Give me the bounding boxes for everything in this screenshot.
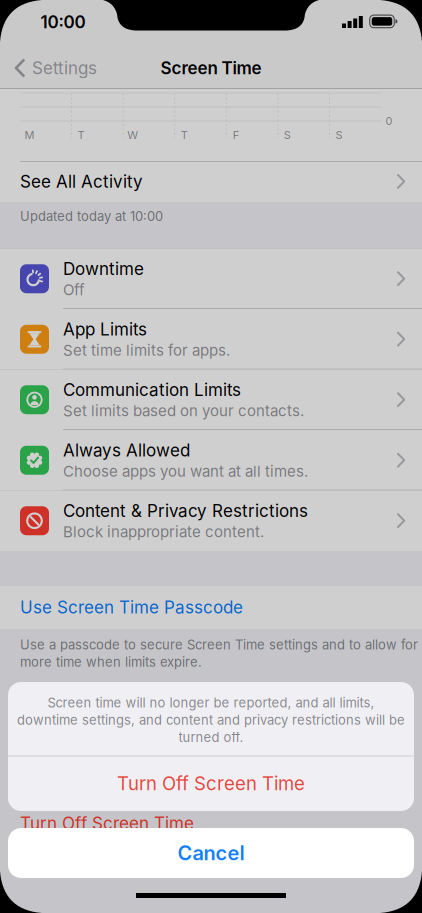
button[interactable]: Use Screen Time Passcode: [0, 586, 422, 629]
staticText: 0: [385, 114, 392, 128]
staticText: Turn Off Screen Time: [117, 772, 305, 795]
staticText: Always Allowed: [63, 440, 190, 461]
staticText: Use Screen Time Passcode: [20, 597, 243, 618]
staticText: S: [335, 128, 342, 142]
button[interactable]: Turn Off Screen Time: [8, 756, 414, 811]
button[interactable]: Downtime: [0, 248, 422, 309]
staticText: Set time limits for apps.: [63, 341, 230, 359]
staticText: Updated today at 10:00: [20, 208, 163, 224]
staticText: Set limits based on your contacts.: [63, 402, 304, 420]
staticText: See All Activity: [20, 171, 143, 192]
staticText: Screen time will no longer be reported, …: [47, 695, 374, 711]
staticText: more time when limits expire.: [20, 654, 202, 670]
staticText: downtime settings, and content and priva…: [17, 712, 405, 728]
staticText: Cancel: [177, 841, 244, 865]
button[interactable]: App Limits: [0, 309, 422, 369]
staticText: Content & Privacy Restrictions: [63, 501, 308, 521]
staticText: T: [181, 128, 188, 142]
staticText: turned off.: [178, 729, 243, 745]
staticText: Downtime: [63, 259, 144, 279]
button[interactable]: Cancel: [8, 828, 414, 878]
button[interactable]: Settings: [15, 58, 97, 78]
staticText: Choose apps you want at all times.: [63, 462, 308, 480]
staticText: App Limits: [63, 319, 147, 340]
staticText: T: [78, 128, 85, 142]
staticText: M: [24, 128, 34, 142]
button[interactable]: See All Activity: [0, 161, 422, 202]
button[interactable]: Communication Limits: [0, 369, 422, 430]
staticText: Communication Limits: [63, 380, 241, 400]
button[interactable]: Content & Privacy Restrictions: [0, 490, 422, 551]
staticText: Turn Off Screen Time: [20, 813, 194, 834]
staticText: S: [284, 128, 291, 142]
staticText: F: [233, 128, 239, 142]
staticText: W: [127, 128, 138, 142]
staticText: Use a passcode to secure Screen Time set…: [20, 637, 418, 653]
staticText: Screen Time: [160, 58, 261, 78]
staticText: 10:00: [40, 12, 85, 32]
staticText: Block inappropriate content.: [63, 523, 264, 541]
staticText: Off: [63, 281, 85, 299]
button[interactable]: Always Allowed: [0, 430, 422, 490]
staticText: Settings: [32, 58, 97, 78]
